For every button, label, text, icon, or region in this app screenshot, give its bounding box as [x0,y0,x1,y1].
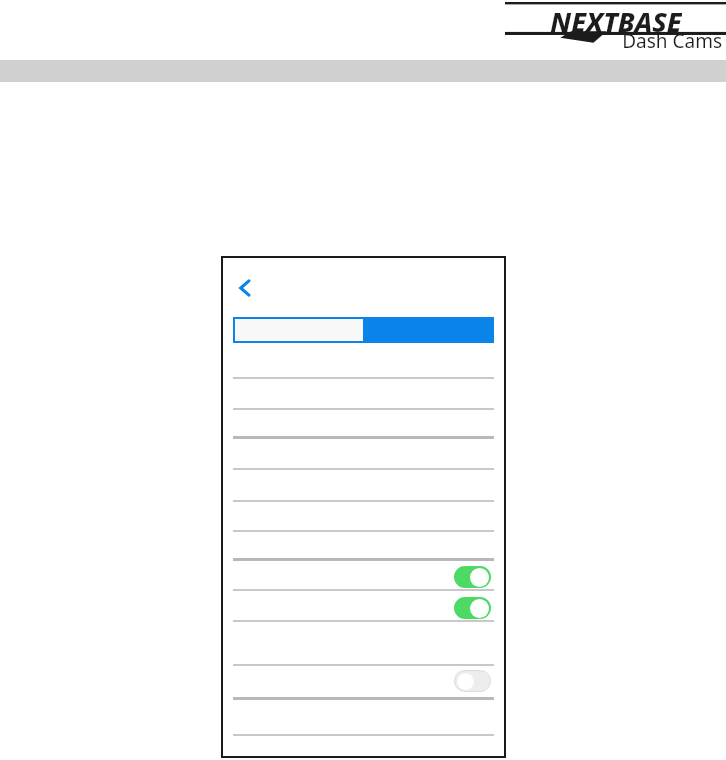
staticText: Dash Cams [622,28,722,54]
button[interactable] [233,589,494,620]
staticText: NEXTBASE [550,3,682,37]
button[interactable] [233,468,494,500]
button[interactable]: Back [227,270,263,306]
button[interactable] [233,317,363,343]
button[interactable] [233,436,494,468]
button[interactable] [233,500,494,530]
button[interactable]: Toggle on [454,597,491,619]
button[interactable] [233,697,494,734]
button[interactable] [233,558,494,589]
button[interactable] [233,620,494,664]
button[interactable] [233,408,494,436]
button[interactable]: Toggle on [454,566,491,588]
button[interactable] [233,377,494,408]
button[interactable]: Toggle off [454,670,491,692]
button[interactable] [233,530,494,558]
button[interactable] [233,664,494,697]
